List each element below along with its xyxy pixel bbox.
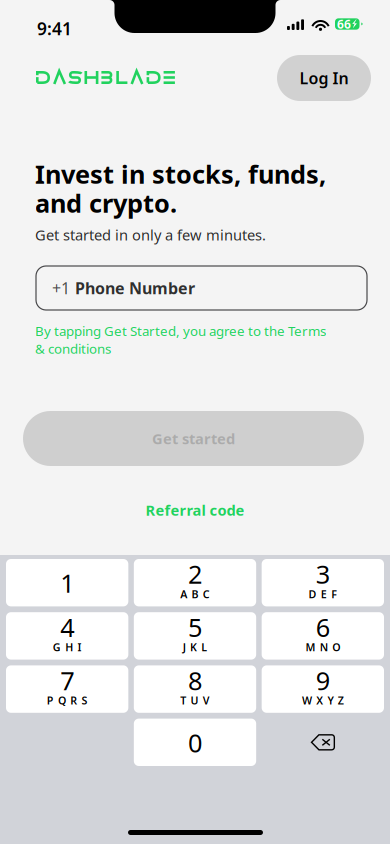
staticText: W: [302, 693, 312, 707]
staticText: V: [203, 693, 210, 707]
staticText: N: [320, 640, 328, 654]
staticText: Y: [327, 693, 333, 707]
button[interactable]: 5: [134, 612, 256, 660]
staticText: 8: [188, 664, 202, 697]
staticText: K: [190, 640, 197, 654]
staticText: 66: [337, 16, 351, 32]
staticText: D: [308, 587, 316, 601]
staticText: 2: [188, 557, 202, 591]
staticText: Referral code: [145, 500, 244, 520]
staticText: T: [180, 693, 186, 707]
button[interactable]: 0: [134, 719, 256, 766]
button[interactable]: 3: [262, 559, 384, 606]
staticText: C: [203, 587, 210, 601]
staticText: M: [305, 640, 315, 654]
staticText: 6: [316, 610, 330, 644]
staticText: Phone Number: [75, 277, 195, 299]
button[interactable]: 7: [6, 665, 128, 713]
button[interactable]: 8: [134, 665, 256, 713]
staticText: I: [77, 640, 81, 654]
staticText: B: [191, 587, 198, 601]
staticText: 5: [188, 610, 202, 644]
button[interactable]: Get started: [23, 411, 364, 466]
button[interactable]: 1: [6, 559, 128, 606]
staticText: R: [70, 693, 77, 707]
staticText: O: [332, 640, 340, 654]
staticText: G: [53, 640, 61, 654]
staticText: U: [190, 693, 198, 707]
staticText: 7: [60, 664, 74, 697]
staticText: +1: [52, 277, 70, 299]
staticText: L: [201, 640, 207, 654]
staticText: F: [331, 587, 337, 601]
button[interactable]: Delete: [262, 719, 384, 766]
staticText: Get started in only a few minutes.: [35, 225, 266, 244]
button[interactable]: 4: [6, 612, 128, 660]
staticText: By tapping Get Started, you agree to the…: [35, 322, 326, 357]
button[interactable]: 6: [262, 612, 384, 660]
button[interactable]: Log In: [277, 55, 371, 101]
staticText: Get started: [152, 429, 235, 448]
staticText: X: [316, 693, 323, 707]
staticText: Z: [338, 693, 344, 707]
staticText: J: [183, 640, 186, 654]
button[interactable]: Referral code: [115, 495, 275, 525]
staticText: 9: [316, 664, 330, 697]
staticText: and crypto.: [35, 186, 177, 220]
staticText: 9:41: [37, 17, 72, 40]
staticText: 0: [188, 726, 202, 759]
button[interactable]: 9: [262, 665, 384, 713]
staticText: H: [65, 640, 73, 654]
staticText: 1: [60, 566, 74, 600]
button[interactable]: 2: [134, 559, 256, 606]
staticText: Invest in stocks, funds,: [35, 157, 326, 191]
staticText: 4: [60, 610, 74, 644]
staticText: S: [82, 693, 88, 707]
staticText: Q: [58, 693, 66, 707]
staticText: E: [321, 587, 327, 601]
staticText: P: [47, 693, 54, 707]
staticText: Log In: [299, 67, 348, 89]
staticText: 3: [316, 557, 330, 591]
staticText: A: [180, 587, 187, 601]
